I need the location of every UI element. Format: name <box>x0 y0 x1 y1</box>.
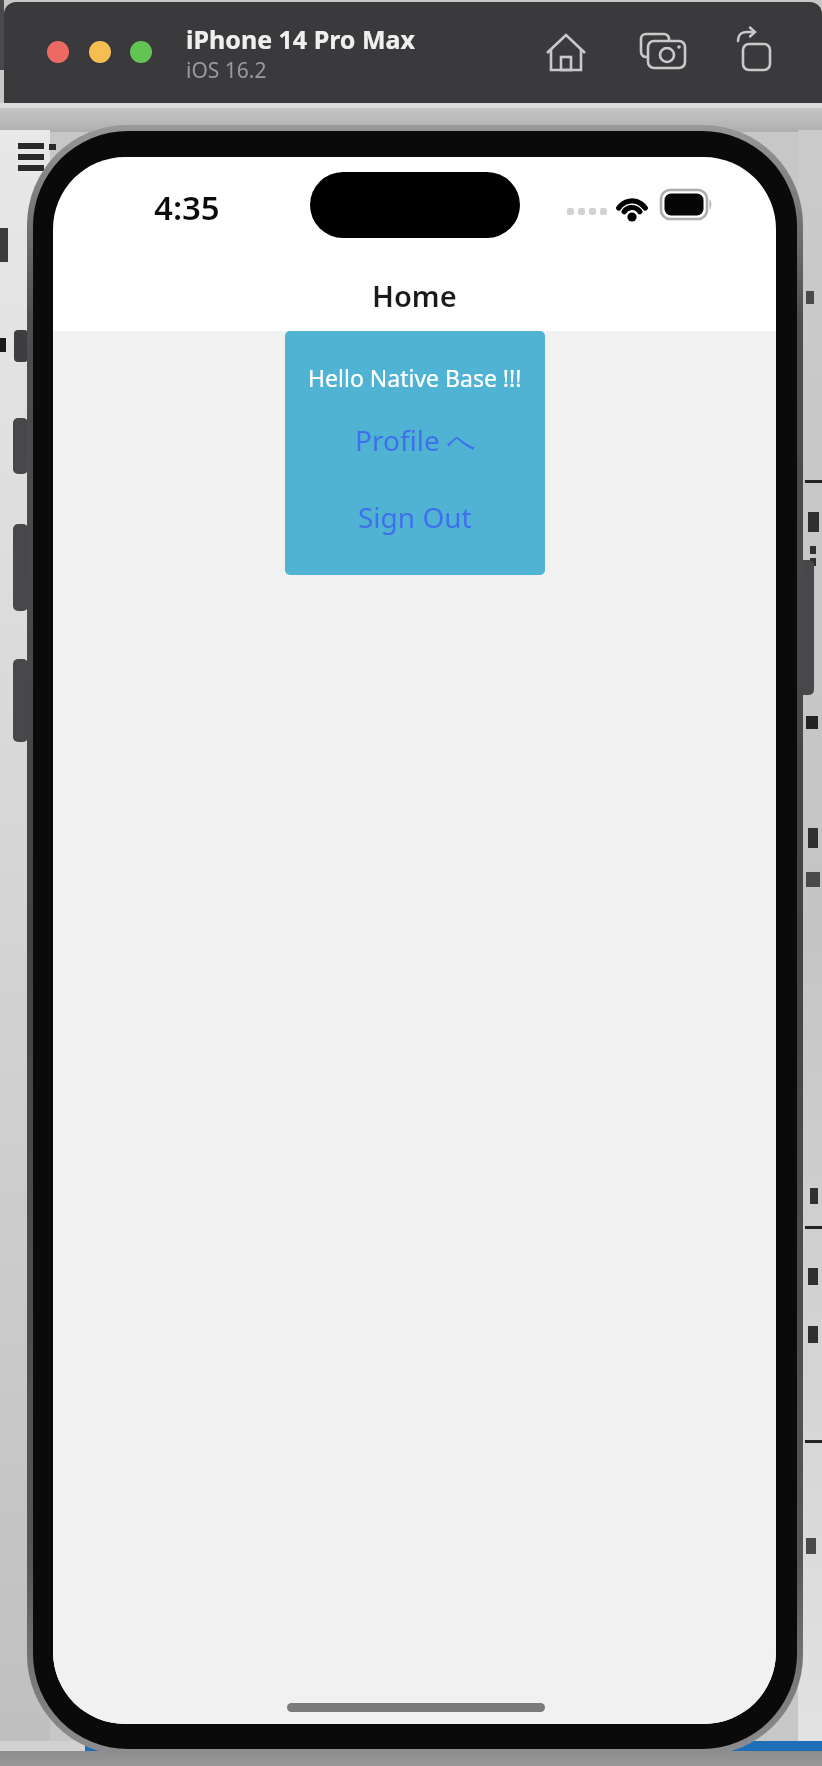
button[interactable] <box>130 41 152 63</box>
button[interactable] <box>731 27 781 77</box>
staticText: Home <box>372 276 457 315</box>
staticText: iPhone 14 Pro Max <box>186 22 415 54</box>
staticText: Hello Native Base !!! <box>308 362 522 392</box>
staticText: Profile へ <box>355 421 476 459</box>
staticText: Sign Out <box>358 498 472 536</box>
button[interactable] <box>637 27 693 77</box>
button[interactable] <box>47 41 69 63</box>
button[interactable]: Sign Out <box>315 497 515 537</box>
button[interactable] <box>89 41 111 63</box>
staticText: iOS 16.2 <box>186 56 267 82</box>
button[interactable] <box>541 27 591 77</box>
button[interactable]: Profile へ <box>315 420 515 460</box>
staticText: 4:35 <box>154 185 220 225</box>
